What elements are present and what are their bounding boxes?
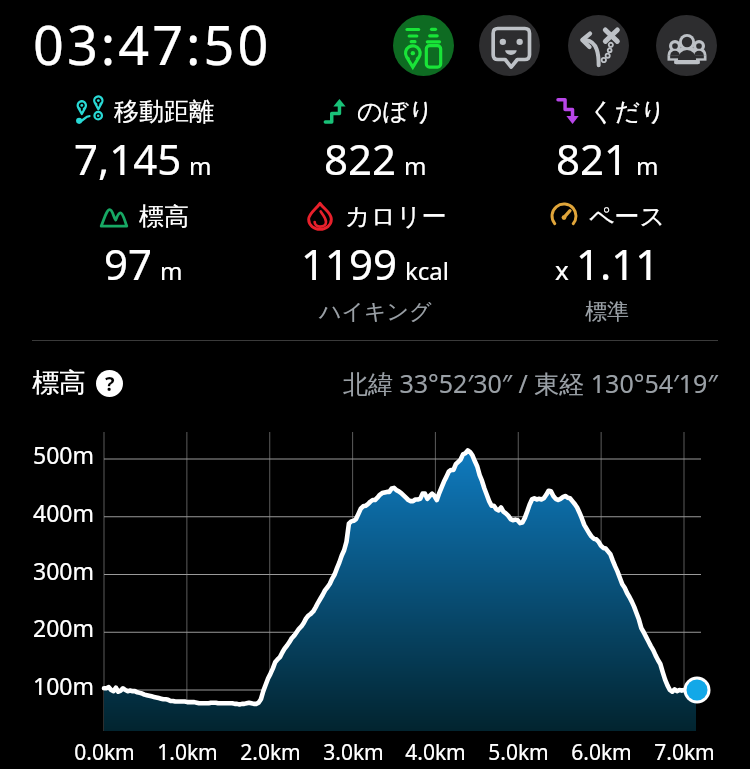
button[interactable]: Help <box>96 370 123 397</box>
staticText: 標準 <box>585 298 629 326</box>
staticText: m <box>160 254 183 287</box>
staticText: 300m <box>33 555 94 586</box>
staticText: x <box>555 252 569 287</box>
staticText: 7,145 <box>74 130 182 187</box>
staticText: ? <box>105 370 115 397</box>
staticText: 400m <box>33 497 94 528</box>
staticText: 200m <box>33 612 94 643</box>
staticText: 標高 <box>32 366 86 400</box>
staticText: 0.0km <box>74 738 135 767</box>
staticText: 7.0km <box>654 738 715 767</box>
staticText: 1.0km <box>157 738 218 767</box>
button[interactable]: 標高 <box>27 200 259 292</box>
staticText: 821 <box>556 130 629 187</box>
staticText: くだり <box>589 96 666 127</box>
staticText: 6.0km <box>571 738 632 767</box>
staticText: 標高 <box>139 201 189 232</box>
staticText: 移動距離 <box>114 96 214 127</box>
staticText: 97 <box>104 235 153 292</box>
staticText: 500m <box>33 439 94 470</box>
button[interactable]: Messages <box>479 15 540 76</box>
button[interactable]: GPS and phone connection <box>393 15 454 76</box>
button[interactable]: Reroute <box>568 15 629 76</box>
staticText: 3.0km <box>323 738 384 767</box>
staticText: 1.11 <box>576 235 660 292</box>
staticText: m <box>404 149 427 182</box>
staticText: ペース <box>589 201 666 232</box>
staticText: ハイキング <box>319 298 432 326</box>
button[interactable]: 移動距離 <box>27 95 259 187</box>
button[interactable]: くだり <box>491 95 723 187</box>
staticText: kcal <box>405 254 449 287</box>
staticText: 2.0km <box>240 738 301 767</box>
staticText: のぼり <box>357 96 434 127</box>
staticText: m <box>189 149 212 182</box>
staticText: 1199 <box>301 235 398 292</box>
staticText: 03:47:50 <box>33 7 272 81</box>
button[interactable]: のぼり <box>259 95 491 187</box>
staticText: 822 <box>324 130 397 187</box>
button[interactable]: Members <box>656 15 717 76</box>
staticText: m <box>636 149 659 182</box>
staticText: 100m <box>33 670 94 701</box>
staticText: 4.0km <box>405 738 466 767</box>
button[interactable]: ペース <box>491 200 723 326</box>
button[interactable]: カロリー <box>259 200 491 326</box>
staticText: カロリー <box>345 201 447 232</box>
staticText: 北緯 33°52′30″ / 東経 130°54′19″ <box>343 366 718 400</box>
staticText: 5.0km <box>488 738 549 767</box>
